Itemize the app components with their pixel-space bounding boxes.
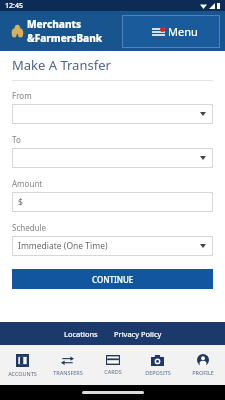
button[interactable]: Locations (59, 326, 103, 342)
staticText: CONTINUE (92, 274, 134, 285)
staticText: Privacy Policy (114, 329, 162, 339)
button[interactable]: DEPOSITS (135, 345, 180, 385)
staticText: Make A Transfer (12, 56, 111, 74)
button[interactable]: Immediate (One Time) (12, 236, 213, 256)
staticText: Amount (12, 178, 43, 189)
button[interactable] (12, 104, 213, 124)
button[interactable]: CARDS (90, 345, 135, 385)
staticText: Merchants (27, 17, 82, 31)
button[interactable]: CONTINUE (12, 269, 213, 289)
staticText: From (12, 90, 32, 101)
staticText: ACCOUNTS (8, 370, 37, 377)
button[interactable]: $ (12, 192, 213, 212)
staticText: $ (18, 196, 23, 208)
staticText: Immediate (One Time) (18, 240, 108, 252)
staticText: &FarmersBank (27, 31, 103, 45)
staticText: PROFILE (192, 369, 214, 376)
button[interactable]: Privacy Policy (109, 326, 167, 342)
button[interactable]: ACCOUNTS (0, 345, 45, 385)
staticText: To (12, 134, 21, 145)
button[interactable]: Menu (122, 15, 220, 48)
staticText: CARDS (104, 368, 122, 375)
staticText: TRANSFERS (53, 369, 83, 376)
button[interactable]: PROFILE (180, 345, 225, 385)
staticText: Menu (168, 24, 198, 39)
staticText: Locations (64, 329, 98, 339)
staticText: DEPOSITS (145, 369, 171, 376)
button[interactable] (12, 148, 213, 168)
staticText: Schedule (12, 222, 47, 233)
button[interactable]: TRANSFERS (45, 345, 90, 385)
staticText: 12:45 (5, 1, 23, 11)
